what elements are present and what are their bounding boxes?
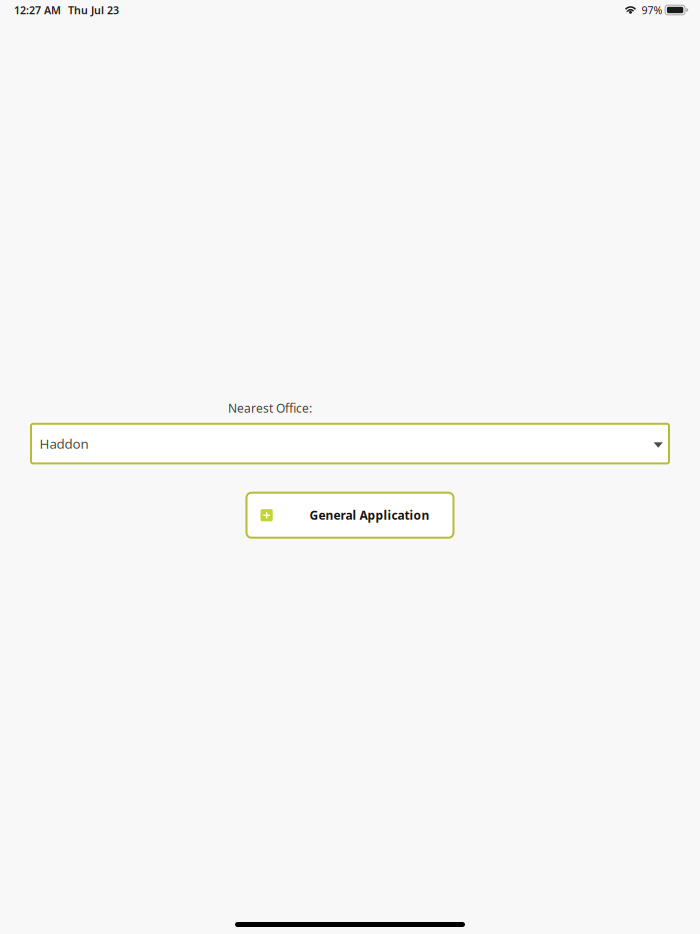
staticText: Thu Jul 23 (68, 3, 119, 17)
staticText: 97% (641, 3, 662, 17)
button[interactable]: Haddon (31, 424, 669, 463)
staticText: Haddon (39, 435, 88, 452)
staticText: General Application (309, 507, 429, 523)
staticText: 12:27 AM (14, 3, 61, 17)
button[interactable]: General Application (246, 493, 453, 538)
staticText: Nearest Office: (228, 400, 312, 416)
